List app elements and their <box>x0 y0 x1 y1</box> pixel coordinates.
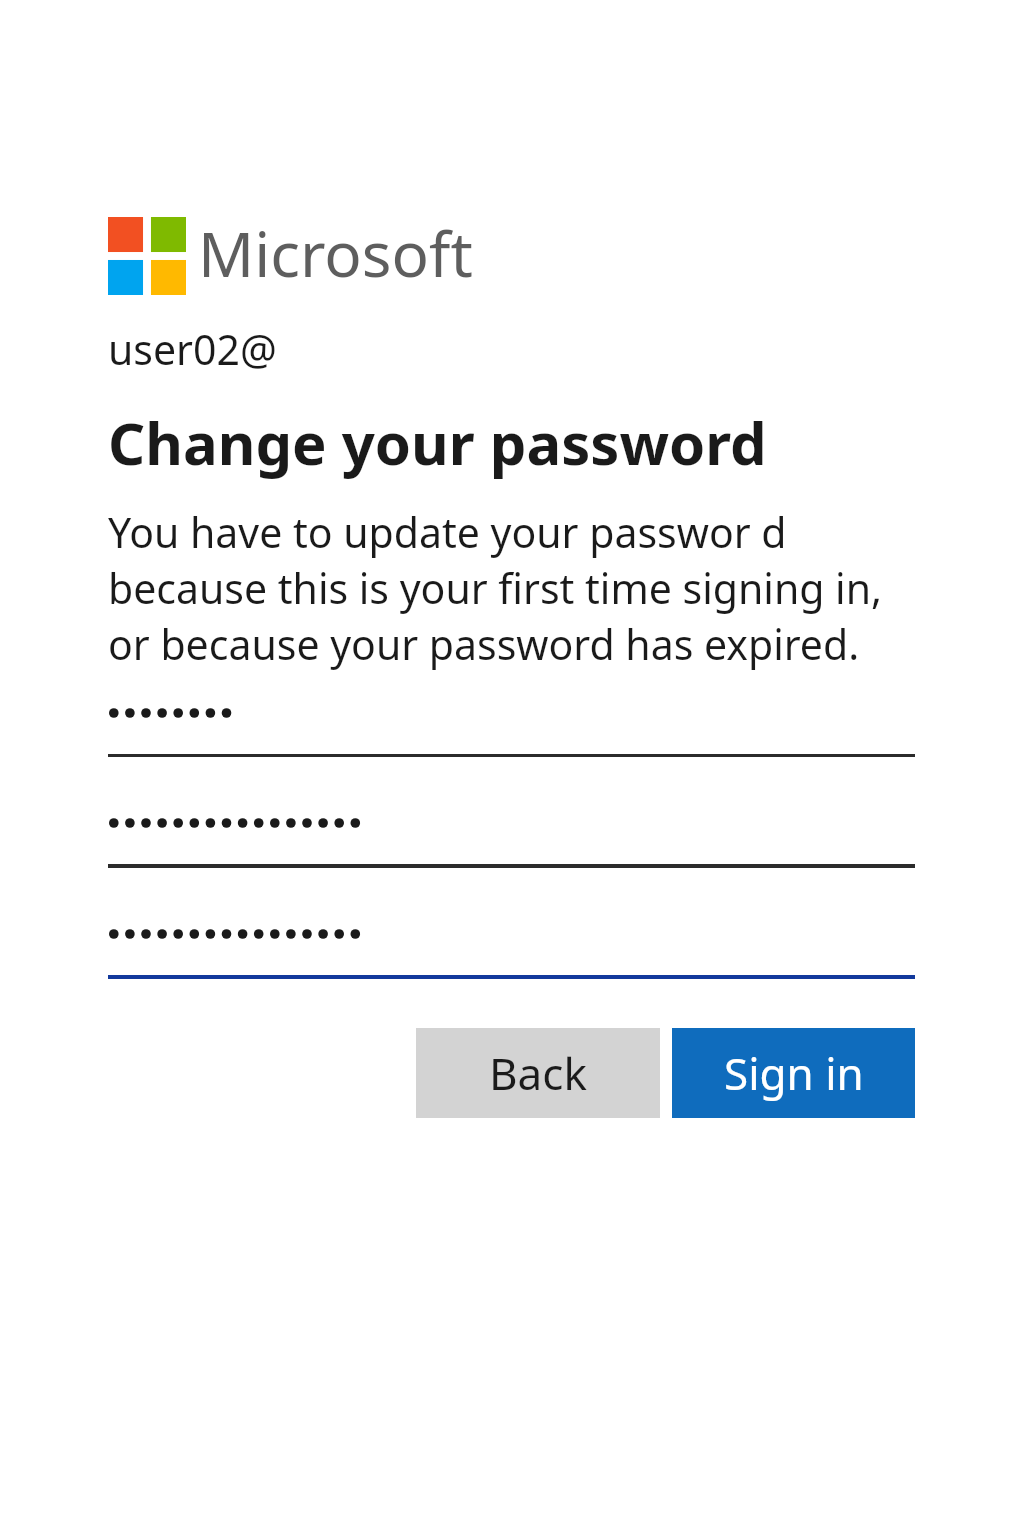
staticText: user02@ <box>108 321 277 377</box>
staticText: Back <box>489 1043 587 1103</box>
staticText: Sign in <box>724 1043 864 1103</box>
button[interactable] <box>108 757 915 868</box>
button[interactable]: Back <box>416 1028 660 1118</box>
staticText: You have to update your passwor d becaus… <box>108 504 915 672</box>
staticText: Change your password <box>108 403 767 482</box>
button[interactable]: Sign in <box>672 1028 915 1118</box>
button[interactable] <box>108 868 915 979</box>
button[interactable] <box>108 672 915 757</box>
staticText: Microsoft <box>198 211 473 295</box>
